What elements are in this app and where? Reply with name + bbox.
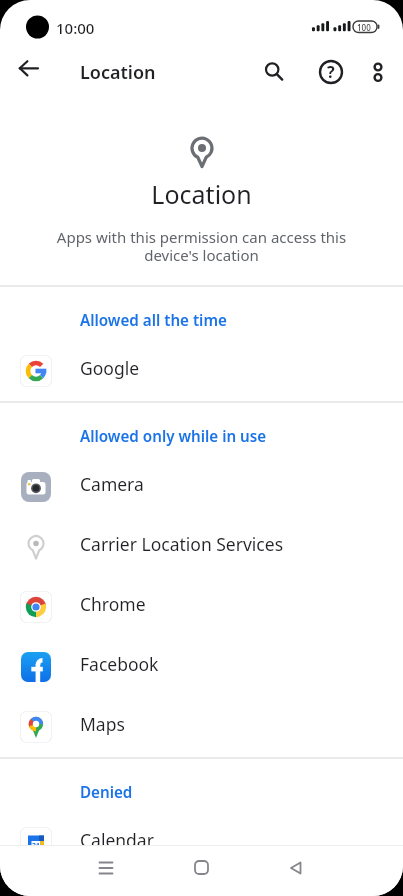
staticText: 31 [32, 841, 41, 851]
staticText: 100 [357, 22, 371, 33]
staticText: Allowed all the time [80, 310, 227, 331]
staticText: Denied [80, 782, 133, 803]
staticText: Chrome [80, 592, 146, 616]
staticText: Calendar [80, 828, 154, 852]
staticText: Google [80, 356, 140, 380]
staticText: Facebook [80, 652, 159, 676]
button[interactable]: Chrome [0, 577, 403, 637]
staticText: ? [327, 61, 335, 83]
button[interactable]: ? [309, 50, 353, 94]
button[interactable] [8, 49, 52, 93]
button[interactable]: Carrier Location Services [0, 517, 403, 577]
staticText: Maps [80, 712, 125, 736]
staticText: Location [0, 177, 403, 211]
staticText: Camera [80, 472, 144, 496]
button[interactable]: Google [0, 341, 403, 401]
staticText: Carrier Location Services [80, 532, 284, 556]
staticText: 10:00 [56, 18, 95, 38]
button[interactable] [179, 842, 223, 893]
button[interactable]: 31 [0, 813, 403, 873]
staticText: Apps with this permission can access thi… [0, 227, 403, 265]
button[interactable]: Maps [0, 697, 403, 757]
staticText: Allowed only while in use [80, 426, 267, 447]
button[interactable]: Camera [0, 457, 403, 517]
button[interactable] [84, 842, 128, 893]
staticText: Location [80, 60, 156, 85]
button[interactable] [252, 50, 296, 94]
button[interactable] [274, 842, 318, 893]
button[interactable]: Facebook [0, 637, 403, 697]
button[interactable] [356, 50, 400, 94]
